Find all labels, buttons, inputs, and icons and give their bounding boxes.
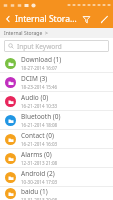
button[interactable]: Bluetooth (0) (0, 111, 113, 130)
staticText: Bluetooth (0) (21, 112, 61, 121)
staticText: 16-21-2014 18:08 (21, 122, 58, 128)
button[interactable]: DCIM (3) (0, 73, 113, 92)
button[interactable]: Audio (0) (0, 92, 113, 111)
staticText: 13-31-2013 20:08 (21, 197, 58, 200)
button[interactable]: Filter (77, 10, 95, 28)
staticText: Internal Storage (15, 13, 77, 25)
button[interactable]: Edit (95, 10, 113, 28)
staticText: baidu (1) (21, 187, 48, 196)
staticText: Audio (0) (21, 93, 49, 102)
button[interactable]: Android (2) (0, 168, 113, 187)
staticText: Android (2) (21, 169, 55, 178)
staticText: > (45, 30, 48, 37)
button[interactable]: Input Keyword (4, 40, 109, 52)
staticText: 18-27-2014 16:07 (21, 65, 58, 71)
staticText: 10-30-2014 17:03 (21, 179, 58, 185)
staticText: Internal Storage (4, 30, 43, 37)
staticText: 18-23-2014 15:46 (21, 84, 58, 90)
button[interactable]: Contact (0) (0, 130, 113, 149)
button[interactable]: Alarms (0) (0, 149, 113, 168)
staticText: DCIM (3) (21, 74, 48, 83)
button[interactable]: Back (0, 10, 15, 28)
button[interactable]: baidu (1) (0, 187, 113, 200)
staticText: 12-31-2013 21:08 (21, 160, 58, 166)
staticText: Alarms (0) (21, 150, 52, 159)
staticText: Download (1) (21, 55, 62, 64)
staticText: Contact (0) (21, 131, 54, 140)
button[interactable]: Internal Storage (4, 30, 43, 37)
staticText: 16-21-2014 16:03 (21, 141, 58, 147)
staticText: Input Keyword (17, 42, 62, 51)
button[interactable]: Download (1) (0, 54, 113, 73)
staticText: 16-21-2014 10:33 (21, 103, 58, 109)
